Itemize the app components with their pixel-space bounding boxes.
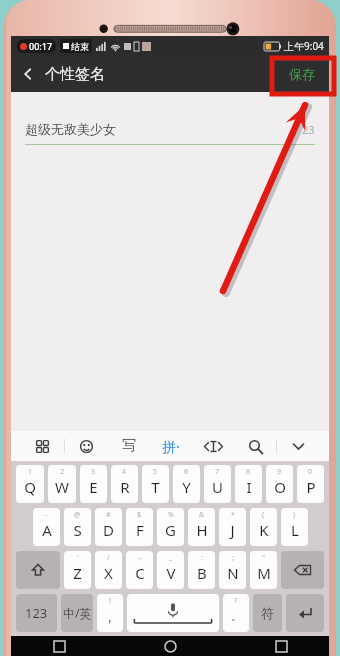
- staticText: I: [246, 477, 252, 497]
- button[interactable]: Space: [127, 594, 219, 632]
- button[interactable]: 符: [253, 594, 282, 632]
- button[interactable]: Recents: [47, 636, 71, 656]
- staticText: 拼·: [162, 437, 180, 456]
- staticText: P: [306, 477, 316, 497]
- staticText: 个性签名: [45, 65, 105, 84]
- staticText: E: [89, 477, 98, 497]
- staticText: 2: [60, 467, 65, 477]
- button[interactable]: (: [250, 508, 277, 546]
- button[interactable]: 1: [16, 465, 44, 503]
- staticText: 8: [246, 467, 251, 477]
- staticText: V: [166, 563, 176, 583]
- staticText: 6: [184, 467, 189, 477]
- staticText: ': [77, 553, 79, 563]
- button[interactable]: ): [281, 508, 308, 546]
- staticText: 123: [25, 604, 48, 622]
- staticText: O: [274, 477, 286, 497]
- staticText: 符: [261, 605, 274, 621]
- button[interactable]: Search: [234, 431, 276, 461]
- staticText: F: [136, 520, 144, 540]
- button[interactable]: &: [188, 508, 215, 546]
- staticText: 1: [28, 467, 33, 477]
- button[interactable]: 5: [142, 465, 169, 503]
- button[interactable]: 0: [297, 465, 324, 503]
- staticText: Y: [182, 477, 191, 497]
- staticText: D: [103, 520, 114, 540]
- staticText: J: [230, 520, 235, 540]
- button[interactable]: ?: [223, 594, 249, 632]
- staticText: A: [42, 520, 52, 540]
- staticText: 5: [153, 467, 158, 477]
- button[interactable]: ': [64, 551, 91, 589]
- staticText: ": [262, 553, 265, 563]
- button[interactable]: 拼·: [150, 431, 192, 461]
- staticText: (: [262, 510, 265, 520]
- button[interactable]: Back: [21, 56, 111, 92]
- staticText: ;: [232, 553, 234, 563]
- staticText: 7: [215, 467, 220, 477]
- button[interactable]: $: [126, 508, 153, 546]
- button[interactable]: 123: [16, 594, 57, 632]
- button[interactable]: Shift: [16, 551, 60, 589]
- button[interactable]: Enter: [286, 594, 324, 632]
- staticText: Q: [24, 477, 36, 497]
- staticText: N: [227, 563, 239, 583]
- staticText: :: [201, 553, 203, 563]
- button[interactable]: Keyboard layouts: [21, 431, 64, 461]
- staticText: $: [137, 510, 142, 520]
- button[interactable]: ;: [219, 551, 246, 589]
- button[interactable]: 6: [173, 465, 200, 503]
- staticText: 00:17: [29, 40, 53, 52]
- button[interactable]: /: [95, 551, 122, 589]
- button[interactable]: 7: [204, 465, 231, 503]
- button[interactable]: 4: [111, 465, 138, 503]
- staticText: G: [165, 520, 176, 540]
- staticText: Z: [73, 563, 82, 583]
- button[interactable]: -: [33, 508, 60, 546]
- button[interactable]: 2: [48, 465, 76, 503]
- staticText: R: [120, 477, 130, 497]
- button[interactable]: 写: [108, 431, 150, 461]
- button[interactable]: %: [157, 508, 184, 546]
- button[interactable]: @: [64, 508, 91, 546]
- staticText: W: [55, 477, 69, 497]
- staticText: 4: [122, 467, 127, 477]
- button[interactable]: !: [97, 594, 123, 632]
- staticText: S: [73, 520, 82, 540]
- button[interactable]: 保存: [285, 62, 319, 86]
- button[interactable]: Home: [158, 636, 182, 656]
- staticText: B: [197, 563, 207, 583]
- staticText: ,: [108, 608, 112, 624]
- staticText: L: [291, 520, 299, 540]
- button[interactable]: Emoji: [65, 431, 108, 461]
- staticText: 上午9:04: [284, 39, 324, 53]
- button[interactable]: 中/英: [61, 594, 93, 632]
- staticText: 3: [91, 467, 96, 477]
- button[interactable]: 8: [235, 465, 262, 503]
- staticText: 23: [302, 122, 315, 137]
- staticText: ): [293, 510, 296, 520]
- button[interactable]: Hide keyboard: [277, 431, 319, 461]
- staticText: !: [109, 596, 111, 606]
- button[interactable]: 3: [80, 465, 107, 503]
- staticText: –: [138, 553, 142, 563]
- staticText: &: [199, 510, 205, 520]
- button[interactable]: –: [126, 551, 153, 589]
- staticText: 0: [308, 467, 313, 477]
- button[interactable]: #: [95, 508, 122, 546]
- staticText: T: [151, 477, 160, 497]
- button[interactable]: Backspace: [281, 551, 324, 589]
- button[interactable]: :: [188, 551, 215, 589]
- staticText: #: [106, 510, 111, 520]
- button[interactable]: Back: [269, 636, 293, 656]
- button[interactable]: 9: [266, 465, 293, 503]
- button[interactable]: ": [250, 551, 277, 589]
- staticText: M: [257, 563, 271, 583]
- staticText: 写: [122, 437, 136, 455]
- staticText: 保存: [289, 66, 315, 82]
- button[interactable]: Cursor: [192, 431, 234, 461]
- button[interactable]: _: [157, 551, 184, 589]
- staticText: 超级无敌美少女: [25, 121, 116, 137]
- button[interactable]: *: [219, 508, 246, 546]
- staticText: U: [212, 477, 223, 497]
